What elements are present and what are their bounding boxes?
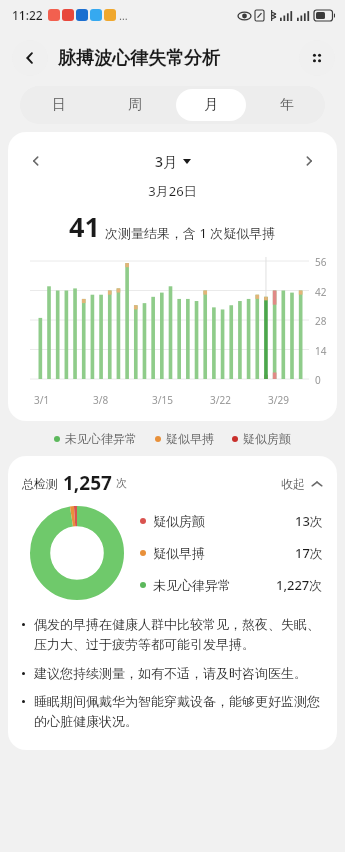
staticText: 13次 (295, 512, 323, 530)
button[interactable]: Previous month (22, 147, 50, 175)
staticText: 疑似房颤 (153, 513, 205, 529)
staticText: 3月26日 (8, 182, 337, 200)
staticText: 疑似早搏 (166, 431, 214, 446)
button[interactable]: 日 (23, 89, 94, 121)
staticText: 未见心律异常 (153, 577, 231, 593)
staticText: 收起 (281, 476, 305, 491)
button[interactable]: Next month (295, 147, 323, 175)
staticText: 3/15 (152, 393, 173, 407)
staticText: 3/8 (93, 393, 109, 407)
staticText: 1,227次 (276, 576, 323, 594)
staticText: 偶发的早搏在健康人群中比较常见，熬夜、失眠、压力大、过于疲劳等都可能引发早搏。 (34, 616, 323, 653)
button[interactable]: 年 (252, 89, 322, 121)
button[interactable]: More options (299, 40, 335, 76)
staticText: 脉搏波心律失常分析 (58, 47, 220, 70)
staticText: 3/1 (34, 393, 50, 407)
staticText: 建议您持续测量，如有不适，请及时咨询医生。 (34, 665, 307, 681)
staticText: 11:22 (12, 7, 43, 23)
staticText: 睡眠期间佩戴华为智能穿戴设备，能够更好监测您的心脏健康状况。 (34, 693, 323, 730)
button[interactable]: 周 (100, 89, 170, 121)
staticText: 1,257 (63, 470, 112, 496)
staticText: 17次 (295, 544, 323, 562)
staticText: 年 (280, 96, 294, 114)
staticText: 疑似早搏 (153, 545, 205, 561)
staticText: 56 (315, 255, 327, 269)
staticText: 3/22 (210, 393, 231, 407)
staticText: 未见心律异常 (65, 431, 137, 446)
staticText: 疑似房颤 (243, 431, 291, 446)
staticText: 日 (52, 96, 66, 114)
staticText: 周 (128, 96, 142, 114)
staticText: 41 (69, 208, 100, 245)
staticText: 3月 (155, 152, 178, 171)
staticText: 42 (315, 285, 327, 299)
button[interactable]: 收起 (281, 476, 323, 491)
button[interactable]: Back (12, 40, 48, 76)
staticText: 28 (315, 314, 327, 328)
staticText: 次测量结果，含 1 次疑似早搏 (105, 224, 276, 242)
staticText: 3/29 (268, 393, 289, 407)
button[interactable]: 3月 (50, 152, 295, 171)
button[interactable]: 月 (176, 89, 246, 121)
staticText: … (119, 8, 128, 23)
staticText: 月 (204, 96, 218, 114)
staticText: 总检测 (22, 476, 58, 491)
staticText: 次 (116, 476, 127, 490)
staticText: 14 (315, 344, 327, 358)
staticText: 0 (315, 373, 321, 387)
